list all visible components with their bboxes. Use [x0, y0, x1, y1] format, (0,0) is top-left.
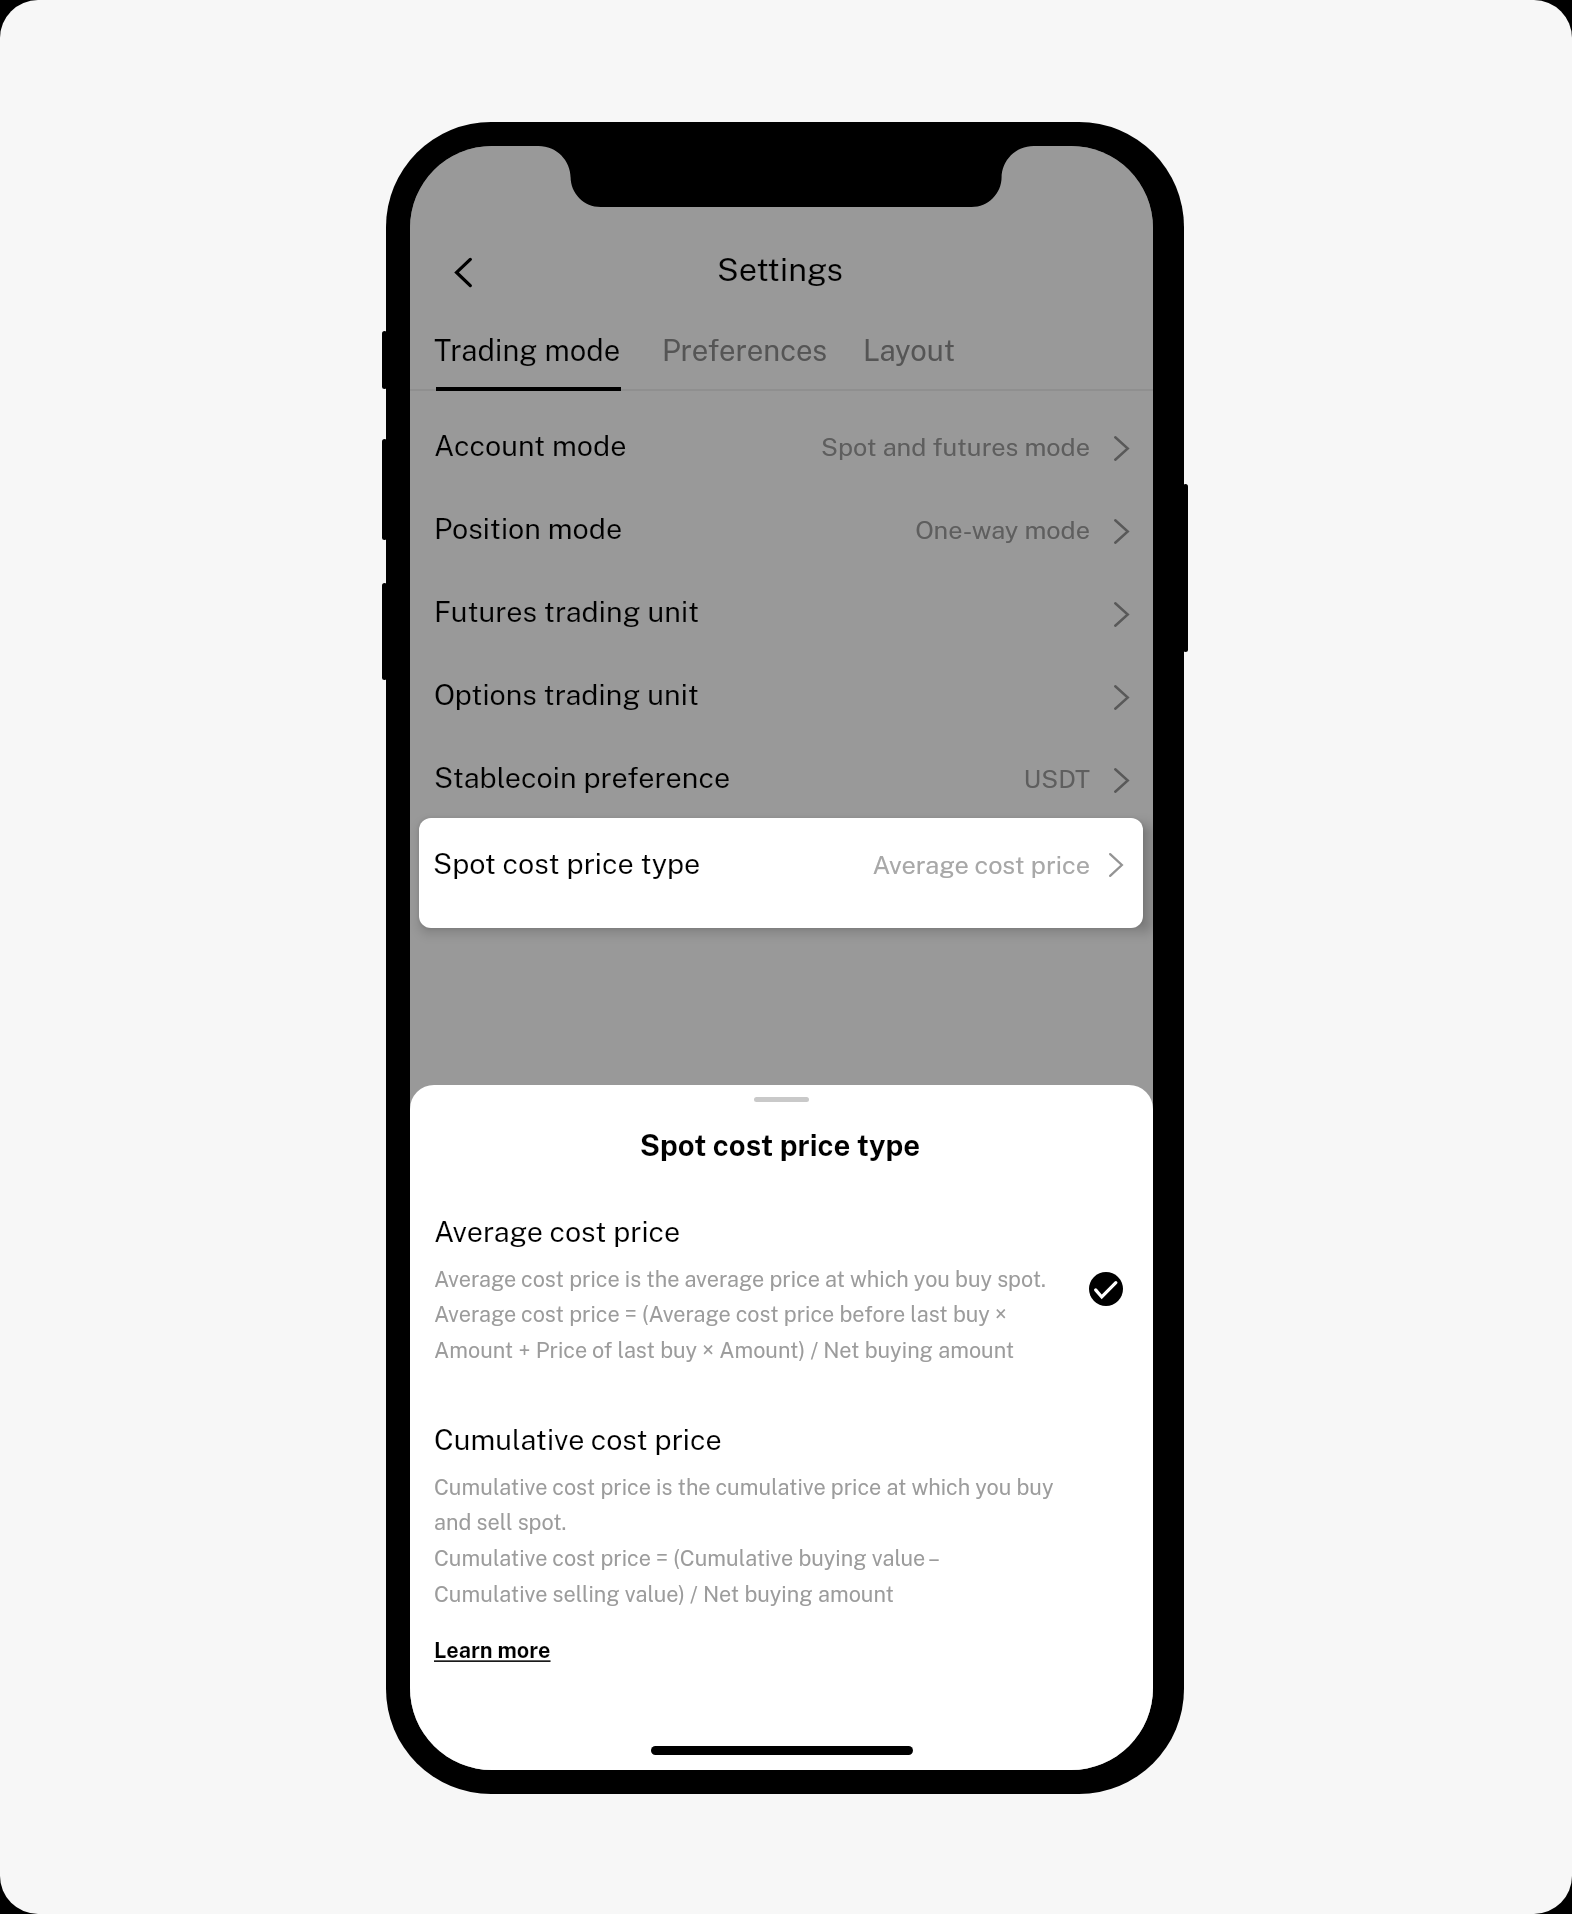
staticText: Preferences	[662, 333, 828, 367]
staticText: Cumulative cost price	[434, 1423, 722, 1457]
button[interactable]	[410, 739, 1153, 822]
button[interactable]: Back	[436, 246, 496, 306]
staticText: Amount + Price of last buy × Amount) / N…	[434, 1337, 1015, 1362]
staticText: Layout	[863, 333, 956, 367]
button[interactable]	[430, 332, 625, 388]
staticText: and sell spot.	[434, 1509, 567, 1534]
button[interactable]	[859, 332, 962, 388]
staticText: Average cost price	[570, 850, 1090, 880]
staticText: Learn more	[434, 1637, 551, 1662]
button[interactable]	[410, 490, 1153, 573]
staticText: One-way mode	[570, 515, 1090, 545]
button[interactable]	[658, 332, 828, 388]
staticText: Position mode	[434, 512, 623, 546]
button[interactable]	[410, 656, 1153, 739]
button[interactable]	[428, 1206, 1128, 1376]
button[interactable]	[419, 818, 1143, 928]
button[interactable]	[428, 1416, 1128, 1621]
staticText: Spot cost price type	[480, 1128, 1080, 1162]
button[interactable]	[410, 573, 1153, 656]
staticText: USDT	[570, 764, 1090, 794]
staticText: Spot cost price type	[433, 847, 701, 881]
staticText: Options trading unit	[434, 678, 699, 712]
staticText: Spot and futures mode	[570, 432, 1090, 462]
staticText: Cumulative cost price is the cumulative …	[434, 1474, 1054, 1499]
staticText: Settings	[717, 250, 843, 288]
button[interactable]	[410, 407, 1153, 490]
staticText: Account mode	[434, 429, 627, 463]
staticText: Futures trading unit	[434, 595, 700, 629]
staticText: Cumulative cost price = (Cumulative buyi…	[434, 1545, 941, 1570]
staticText: Trading mode	[434, 333, 621, 367]
staticText: Average cost price = (Average cost price…	[434, 1301, 1007, 1326]
button[interactable]	[429, 1628, 557, 1670]
staticText: Average cost price is the average price …	[434, 1266, 1046, 1291]
staticText: Stablecoin preference	[434, 761, 731, 795]
staticText: Average cost price	[434, 1215, 681, 1249]
staticText: Cumulative selling value) / Net buying a…	[434, 1581, 894, 1606]
